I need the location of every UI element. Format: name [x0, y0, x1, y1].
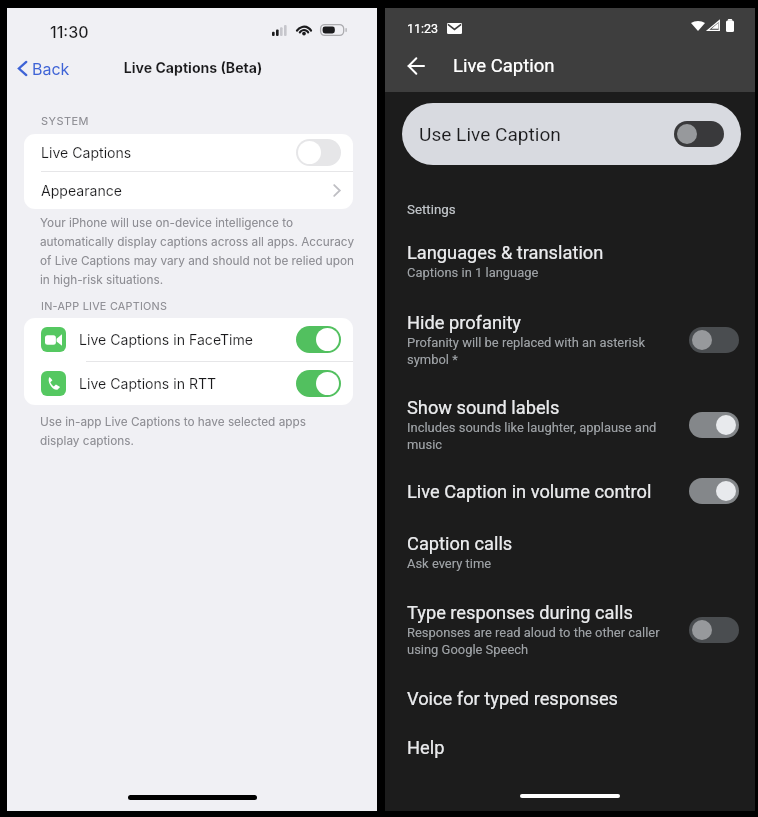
button[interactable]: Back: [16, 57, 72, 80]
button[interactable]: Help: [385, 731, 755, 764]
staticText: Appearance: [41, 182, 123, 199]
staticText: Voice for typed responses: [407, 688, 618, 709]
staticText: Live Captions (Beta): [9, 59, 377, 76]
button[interactable]: [689, 617, 739, 643]
staticText: Live Captions in RTT: [79, 375, 217, 392]
button[interactable]: [296, 326, 341, 353]
staticText: Caption calls: [407, 533, 513, 554]
staticText: Show sound labels: [407, 397, 560, 418]
staticText: Languages & translation: [407, 242, 604, 263]
staticText: Live Caption: [453, 55, 555, 77]
button[interactable]: [689, 327, 739, 353]
staticText: Profanity will be replaced with an aster…: [407, 335, 645, 368]
staticText: Captions in 1 language: [407, 265, 539, 280]
staticText: 11:30: [50, 22, 89, 41]
button[interactable]: Type responses during calls: [385, 596, 755, 664]
staticText: SYSTEM: [41, 114, 89, 127]
staticText: Use in-app Live Captions to have selecte…: [40, 415, 370, 448]
button[interactable]: Show sound labels: [385, 391, 755, 459]
button[interactable]: Caption calls: [385, 527, 755, 577]
button[interactable]: Live Captions: [24, 134, 353, 171]
staticText: Your iPhone will use on-device intellige…: [40, 216, 370, 287]
staticText: Back: [32, 59, 70, 78]
staticText: Live Caption in volume control: [407, 481, 652, 502]
staticText: Type responses during calls: [407, 602, 633, 623]
button[interactable]: Appearance: [24, 172, 353, 209]
staticText: Includes sounds like laughter, applause …: [407, 420, 657, 453]
button[interactable]: Back: [397, 47, 435, 85]
staticText: Live Captions in FaceTime: [79, 331, 254, 348]
staticText: Hide profanity: [407, 312, 522, 333]
button[interactable]: Live Captions in RTT: [24, 362, 353, 405]
staticText: 11:23: [407, 21, 439, 36]
staticText: Use Live Caption: [419, 123, 561, 145]
button[interactable]: Hide profanity: [385, 306, 755, 374]
button[interactable]: Live Captions in FaceTime: [24, 318, 353, 361]
staticText: Help: [407, 737, 445, 758]
button[interactable]: [674, 121, 724, 147]
button[interactable]: Live Caption in volume control: [385, 472, 755, 510]
staticText: Live Captions: [41, 144, 132, 161]
staticText: IN-APP LIVE CAPTIONS: [41, 300, 168, 313]
button[interactable]: Languages & translation: [385, 236, 755, 286]
staticText: Settings: [407, 202, 456, 218]
button[interactable]: [689, 412, 739, 438]
button[interactable]: [296, 370, 341, 397]
button[interactable]: [296, 139, 341, 166]
button[interactable]: [689, 478, 739, 504]
staticText: Responses are read aloud to the other ca…: [407, 625, 660, 658]
button[interactable]: Voice for typed responses: [385, 682, 755, 715]
staticText: Ask every time: [407, 556, 492, 571]
button[interactable]: Use Live Caption: [402, 103, 741, 165]
